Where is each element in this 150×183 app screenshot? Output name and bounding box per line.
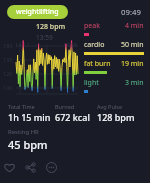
staticText: 45 bpm <box>8 137 48 152</box>
button[interactable]: fat burn <box>84 59 144 78</box>
staticText: 09:49 <box>121 7 141 18</box>
button[interactable]: Favorite <box>0 158 19 177</box>
staticText: light <box>84 78 99 88</box>
button[interactable]: peak <box>84 21 144 40</box>
staticText: 180 <box>3 42 13 49</box>
button[interactable]: Share <box>21 158 40 177</box>
staticText: 13:12 <box>15 41 30 48</box>
staticText: Avg Pulse <box>97 103 123 110</box>
staticText: 128 bpm <box>97 111 135 123</box>
staticText: fat burn <box>84 59 111 69</box>
staticText: 120 <box>3 70 13 77</box>
button[interactable]: More options <box>42 158 61 177</box>
staticText: 672 kcal <box>55 111 90 123</box>
button[interactable]: cardio <box>84 40 144 59</box>
staticText: weightlifting <box>16 7 59 17</box>
staticText: peak <box>84 21 100 31</box>
staticText: 13:59 <box>36 33 53 42</box>
staticText: 1h 15 min <box>8 111 51 123</box>
staticText: 150 <box>3 56 13 63</box>
staticText: Burned <box>55 103 75 110</box>
staticText: 3 min <box>125 78 144 88</box>
button[interactable]: weightlifting <box>7 5 68 19</box>
button[interactable]: light <box>84 78 144 97</box>
staticText: 13:58 <box>63 41 78 48</box>
staticText: Total Time <box>8 103 35 110</box>
staticText: cardio <box>84 40 105 50</box>
staticText: 50 min <box>121 40 144 50</box>
staticText: 100 <box>3 84 13 91</box>
staticText: 19 min <box>121 59 144 69</box>
staticText: 4 min <box>125 21 144 31</box>
staticText: Resting HR <box>8 128 39 136</box>
staticText: 128 bpm <box>36 22 66 32</box>
